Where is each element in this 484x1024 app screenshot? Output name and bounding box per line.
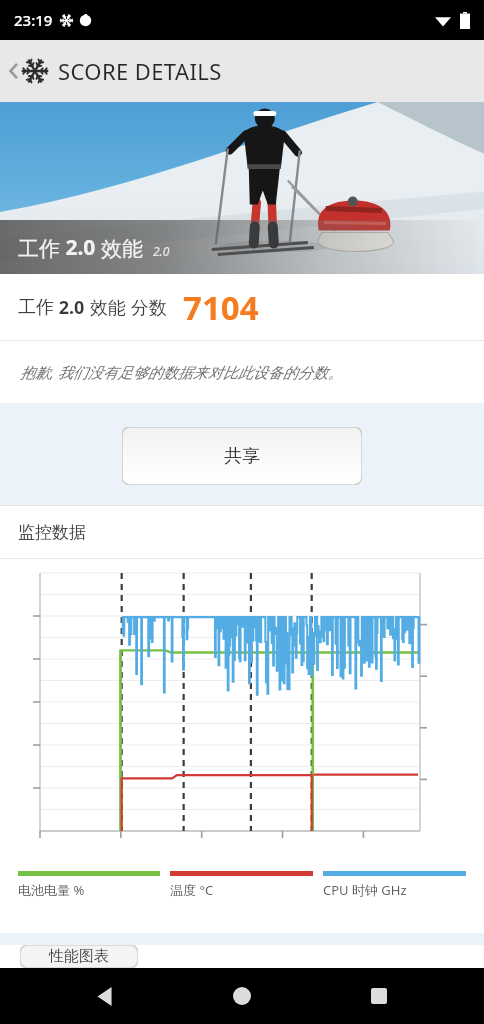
- staticText: 工作: [18, 296, 54, 319]
- staticText: CPU 时钟 GHz: [323, 881, 407, 899]
- button[interactable]: Recent apps: [347, 968, 411, 1024]
- staticText: 抱歉, 我们没有足够的数据来对比此设备的分数。: [20, 362, 343, 382]
- button[interactable]: Back to score details: [0, 40, 484, 102]
- staticText: 效能: [101, 236, 143, 262]
- button[interactable]: 共享: [122, 427, 362, 485]
- staticText: 2.0: [153, 243, 170, 259]
- staticText: 2.0: [54, 295, 90, 320]
- staticText: 温度 °C: [170, 881, 214, 899]
- button[interactable]: 性能图表: [20, 945, 138, 968]
- staticText: 电池电量 %: [18, 881, 85, 899]
- staticText: 2.0: [60, 233, 101, 262]
- staticText: 工作: [18, 236, 60, 262]
- staticText: 监控数据: [18, 522, 86, 543]
- staticText: 7104: [183, 285, 259, 330]
- staticText: 效能 分数: [90, 295, 167, 320]
- button[interactable]: Home: [210, 968, 274, 1024]
- staticText: 性能图表: [49, 947, 109, 966]
- staticText: 23:19: [14, 10, 53, 30]
- staticText: 共享: [224, 445, 260, 468]
- staticText: SCORE DETAILS: [58, 56, 222, 86]
- button[interactable]: Back: [73, 968, 137, 1024]
